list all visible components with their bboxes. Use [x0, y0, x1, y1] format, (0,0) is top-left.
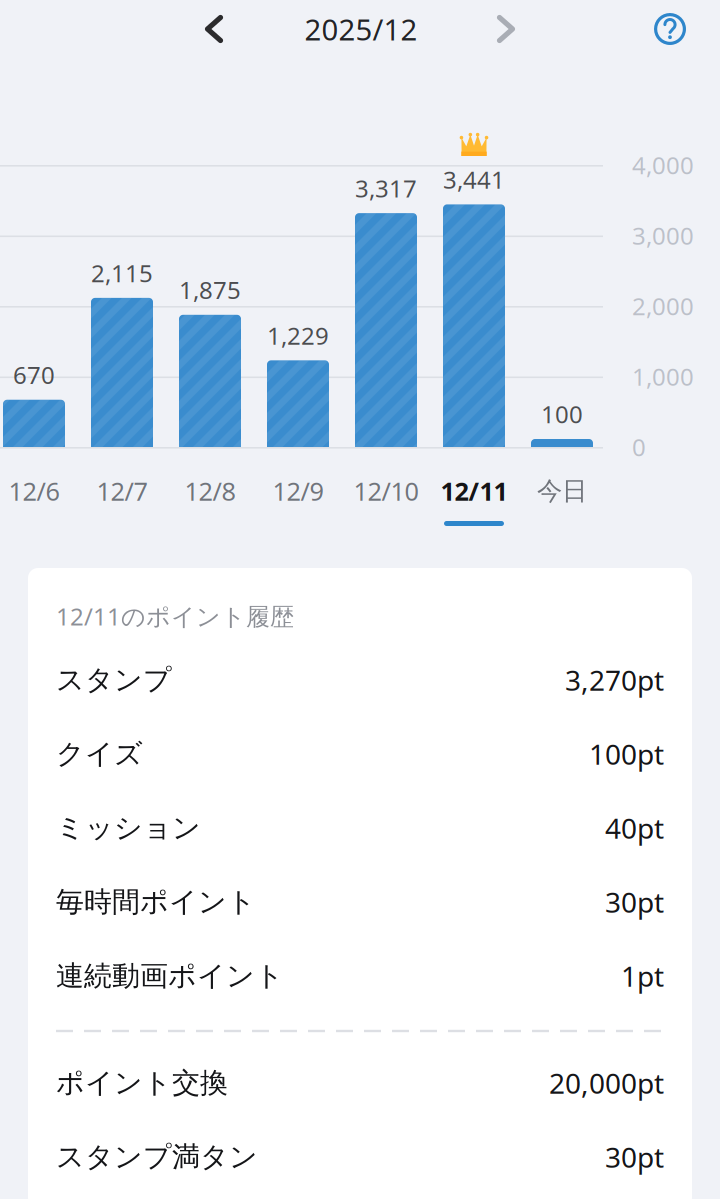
staticText: 12/11のポイント履歴: [56, 600, 294, 632]
staticText: スタンプ満タン: [56, 1140, 258, 1174]
staticText: 3,270pt: [565, 661, 664, 699]
staticText: 30pt: [605, 1138, 664, 1176]
staticText: 100: [541, 398, 583, 430]
staticText: 1pt: [621, 957, 664, 995]
button[interactable]: 12/10: [342, 476, 430, 526]
button[interactable]: スタンプ: [56, 643, 664, 717]
button[interactable]: 毎時間ポイント: [56, 865, 664, 939]
staticText: 2,000: [632, 290, 694, 322]
button[interactable]: スタンプ満タン: [56, 1120, 664, 1194]
staticText: スタンプ: [56, 663, 172, 697]
staticText: 12/7: [96, 474, 147, 508]
staticText: 今日: [537, 475, 587, 506]
staticText: 0: [632, 431, 646, 463]
button[interactable]: ポイント交換: [56, 1046, 664, 1120]
staticText: 20,000pt: [549, 1064, 664, 1102]
button[interactable]: ミッション: [56, 791, 664, 865]
staticText: 3,441: [443, 163, 505, 195]
staticText: 100pt: [589, 735, 664, 773]
staticText: 3,000: [632, 220, 694, 251]
button[interactable]: クイズ: [56, 717, 664, 791]
staticText: 12/11: [440, 474, 507, 508]
button[interactable]: Next month: [478, 1, 534, 57]
staticText: 3,317: [355, 172, 417, 204]
staticText: 12/10: [353, 474, 418, 508]
staticText: ミッション: [56, 811, 201, 845]
staticText: 1,229: [267, 319, 329, 351]
button[interactable]: 12/9: [254, 476, 342, 526]
staticText: 4,000: [632, 149, 694, 181]
staticText: 12/9: [272, 474, 323, 508]
button[interactable]: 12/11: [430, 476, 518, 526]
button[interactable]: 12/6: [0, 476, 78, 526]
staticText: 2,115: [91, 257, 153, 289]
button[interactable]: 今日: [518, 476, 606, 526]
staticText: 連続動画ポイント: [56, 959, 284, 993]
staticText: 12/6: [8, 474, 59, 508]
staticText: 1,000: [632, 361, 694, 392]
staticText: 670: [13, 359, 55, 391]
button[interactable]: Help: [648, 7, 692, 51]
button[interactable]: 12/7: [78, 476, 166, 526]
button[interactable]: Previous month: [186, 1, 242, 57]
staticText: クイズ: [56, 737, 143, 771]
button[interactable]: 連続動画ポイント: [56, 939, 664, 1013]
staticText: 1,875: [179, 274, 241, 306]
staticText: 12/8: [184, 474, 235, 508]
button[interactable]: 12/8: [166, 476, 254, 526]
staticText: 2025/12: [304, 9, 417, 48]
staticText: ポイント交換: [56, 1066, 228, 1100]
staticText: 40pt: [605, 809, 664, 847]
staticText: 毎時間ポイント: [56, 885, 256, 919]
staticText: 30pt: [605, 883, 664, 921]
